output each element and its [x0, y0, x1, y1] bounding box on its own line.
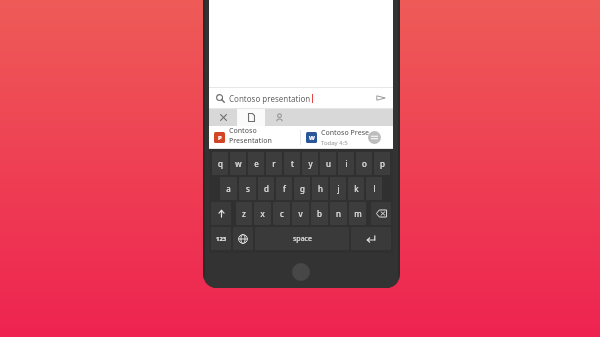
button[interactable]: Files	[237, 109, 265, 126]
staticText: P	[218, 134, 222, 142]
button[interactable]: space	[255, 227, 349, 250]
button[interactable]: h	[312, 177, 328, 200]
staticText: m	[354, 208, 362, 219]
button[interactable]: p	[374, 152, 390, 175]
staticText: g	[300, 183, 305, 194]
other: People	[275, 113, 284, 122]
staticText: u	[326, 158, 331, 169]
button[interactable]: v	[292, 202, 309, 225]
button[interactable]: Search	[209, 87, 393, 109]
button[interactable]: P	[214, 126, 300, 149]
staticText: e	[254, 158, 259, 169]
staticText: o	[362, 158, 367, 169]
button[interactable]: r	[266, 152, 282, 175]
staticText: space	[293, 234, 312, 244]
button[interactable]: x	[254, 202, 271, 225]
staticText: b	[317, 208, 322, 219]
staticText: k	[354, 183, 359, 194]
staticText: Today 4:5	[321, 139, 348, 147]
button[interactable]: w	[230, 152, 246, 175]
button[interactable]: m	[349, 202, 366, 225]
button[interactable]: People	[265, 109, 393, 126]
staticText: j	[337, 183, 340, 194]
staticText: 123	[216, 235, 227, 243]
button[interactable]: q	[212, 152, 228, 175]
button[interactable]: s	[239, 177, 256, 200]
staticText: Contoso presentation	[229, 93, 311, 104]
staticText: f	[283, 183, 286, 194]
button[interactable]: k	[348, 177, 364, 200]
staticText: d	[264, 183, 269, 194]
button[interactable]: W	[306, 126, 393, 149]
staticText: q	[218, 158, 223, 169]
staticText: r	[272, 158, 276, 169]
staticText: s	[246, 183, 250, 194]
button[interactable]: e	[248, 152, 264, 175]
staticText: p	[380, 158, 385, 169]
button[interactable]: c	[273, 202, 290, 225]
button[interactable]: z	[236, 202, 252, 225]
staticText: W	[309, 134, 315, 142]
button[interactable]: b	[311, 202, 328, 225]
button[interactable]: Shift	[211, 202, 231, 225]
staticText: v	[298, 208, 303, 219]
staticText: w	[235, 158, 242, 169]
button[interactable]: t	[284, 152, 300, 175]
button[interactable]: Language	[233, 227, 253, 250]
button[interactable]: a	[220, 177, 237, 200]
staticText: y	[308, 158, 313, 169]
staticText: Today 5:23 PM	[229, 147, 270, 149]
button[interactable]: j	[330, 177, 346, 200]
button[interactable]: o	[356, 152, 372, 175]
other: Search	[216, 94, 225, 103]
staticText: a	[226, 183, 231, 194]
staticText: x	[260, 208, 265, 219]
button[interactable]: d	[258, 177, 274, 200]
button[interactable]: f	[276, 177, 292, 200]
staticText: h	[318, 183, 323, 194]
button[interactable]: l	[366, 177, 382, 200]
staticText: Contoso Prese	[321, 128, 370, 138]
button[interactable]: y	[302, 152, 318, 175]
button[interactable]: u	[320, 152, 336, 175]
button[interactable]: n	[330, 202, 347, 225]
button[interactable]: Numbers	[211, 227, 231, 250]
staticText: c	[280, 208, 284, 219]
staticText: z	[242, 208, 246, 219]
staticText: l	[373, 183, 376, 194]
button[interactable]: g	[294, 177, 310, 200]
staticText: t	[291, 158, 294, 169]
button[interactable]: More options	[368, 131, 381, 144]
staticText: i	[345, 158, 348, 169]
button[interactable]: Backspace	[371, 202, 391, 225]
staticText: Contoso Presentation	[229, 126, 300, 146]
staticText: n	[336, 208, 341, 219]
button[interactable]: Close	[209, 109, 237, 126]
other: Send	[376, 93, 386, 103]
button[interactable]: i	[338, 152, 354, 175]
button[interactable]: Enter	[351, 227, 391, 250]
